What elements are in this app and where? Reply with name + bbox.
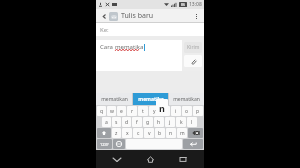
button[interactable]: p xyxy=(193,106,203,116)
button[interactable]: mematikan xyxy=(169,93,204,105)
button[interactable]: y xyxy=(149,106,159,116)
button[interactable]: n xyxy=(166,128,176,138)
button[interactable]: mematikan xyxy=(96,93,132,105)
staticText: q xyxy=(100,108,104,115)
staticText: y xyxy=(153,108,156,115)
staticText: w xyxy=(110,108,114,115)
staticText: o xyxy=(185,108,189,115)
staticText: s xyxy=(115,119,118,126)
staticText: Ke: xyxy=(100,26,109,34)
button[interactable]: Ke: xyxy=(96,23,204,36)
staticText: Tulis baru xyxy=(121,11,154,21)
button[interactable]: v xyxy=(144,128,154,138)
staticText: 123? xyxy=(100,142,109,147)
button[interactable]: x xyxy=(122,128,132,138)
button[interactable]: a xyxy=(102,117,111,127)
staticText: mematikan xyxy=(101,96,128,103)
staticText: v xyxy=(148,130,151,137)
staticText: c xyxy=(137,130,140,137)
button[interactable]: Recent apps xyxy=(171,150,195,168)
button[interactable]: Enter xyxy=(183,139,203,149)
button[interactable]: Shift xyxy=(97,128,111,138)
button[interactable]: Kirim xyxy=(184,42,202,53)
staticText: Cara xyxy=(100,43,115,51)
button[interactable]: g xyxy=(143,117,153,127)
button[interactable]: q xyxy=(97,106,106,116)
staticText: k xyxy=(180,119,183,126)
button[interactable]: l xyxy=(187,117,197,127)
button[interactable]: e xyxy=(117,106,126,116)
staticText: g xyxy=(146,119,150,126)
staticText: f xyxy=(136,119,138,126)
staticText: Kirim xyxy=(187,44,200,51)
staticText: e xyxy=(120,108,123,115)
button[interactable]: Back xyxy=(105,150,129,168)
button[interactable]: 123? xyxy=(97,139,112,149)
button[interactable]: z xyxy=(112,128,121,138)
staticText: h xyxy=(157,119,161,126)
button[interactable]: Back xyxy=(99,11,109,21)
staticText: b xyxy=(158,130,162,137)
staticText: 13:08 xyxy=(189,1,202,8)
button[interactable]: t xyxy=(138,106,148,116)
staticText: i xyxy=(175,108,177,115)
staticText: mematikan xyxy=(173,96,200,103)
staticText: t xyxy=(142,108,144,115)
button[interactable]: Emoji xyxy=(113,139,125,149)
staticText: u xyxy=(163,108,167,115)
staticText: mematika xyxy=(138,96,164,103)
button[interactable]: Attach xyxy=(184,55,202,67)
staticText: r xyxy=(131,108,134,115)
button[interactable]: k xyxy=(176,117,186,127)
button[interactable]: u xyxy=(160,106,170,116)
button[interactable]: More options xyxy=(191,11,201,21)
staticText: 86 xyxy=(181,2,186,7)
button[interactable]: d xyxy=(122,117,131,127)
staticText: mematika xyxy=(115,43,144,51)
button[interactable]: mematika xyxy=(133,93,168,105)
staticText: x xyxy=(126,130,129,137)
button[interactable]: c xyxy=(133,128,143,138)
button[interactable]: h xyxy=(154,117,164,127)
button[interactable]: w xyxy=(107,106,116,116)
staticText: p xyxy=(196,108,200,115)
staticText: n xyxy=(159,102,165,114)
button[interactable]: f xyxy=(132,117,142,127)
button[interactable]: Cara xyxy=(96,40,182,71)
staticText: z xyxy=(115,130,118,137)
staticText: j xyxy=(169,119,171,126)
button[interactable]: j xyxy=(165,117,175,127)
button[interactable]: r xyxy=(127,106,137,116)
button[interactable]: o xyxy=(182,106,192,116)
staticText: d xyxy=(125,119,129,126)
staticText: a xyxy=(105,119,108,126)
staticText: l xyxy=(191,119,193,126)
button[interactable]: m xyxy=(177,128,187,138)
button[interactable]: Home xyxy=(138,150,162,168)
button[interactable]: i xyxy=(171,106,181,116)
button[interactable]: s xyxy=(112,117,121,127)
button[interactable]: b xyxy=(155,128,165,138)
staticText: n xyxy=(169,130,173,137)
button[interactable]: Backspace xyxy=(188,128,203,138)
staticText: m xyxy=(180,130,185,137)
